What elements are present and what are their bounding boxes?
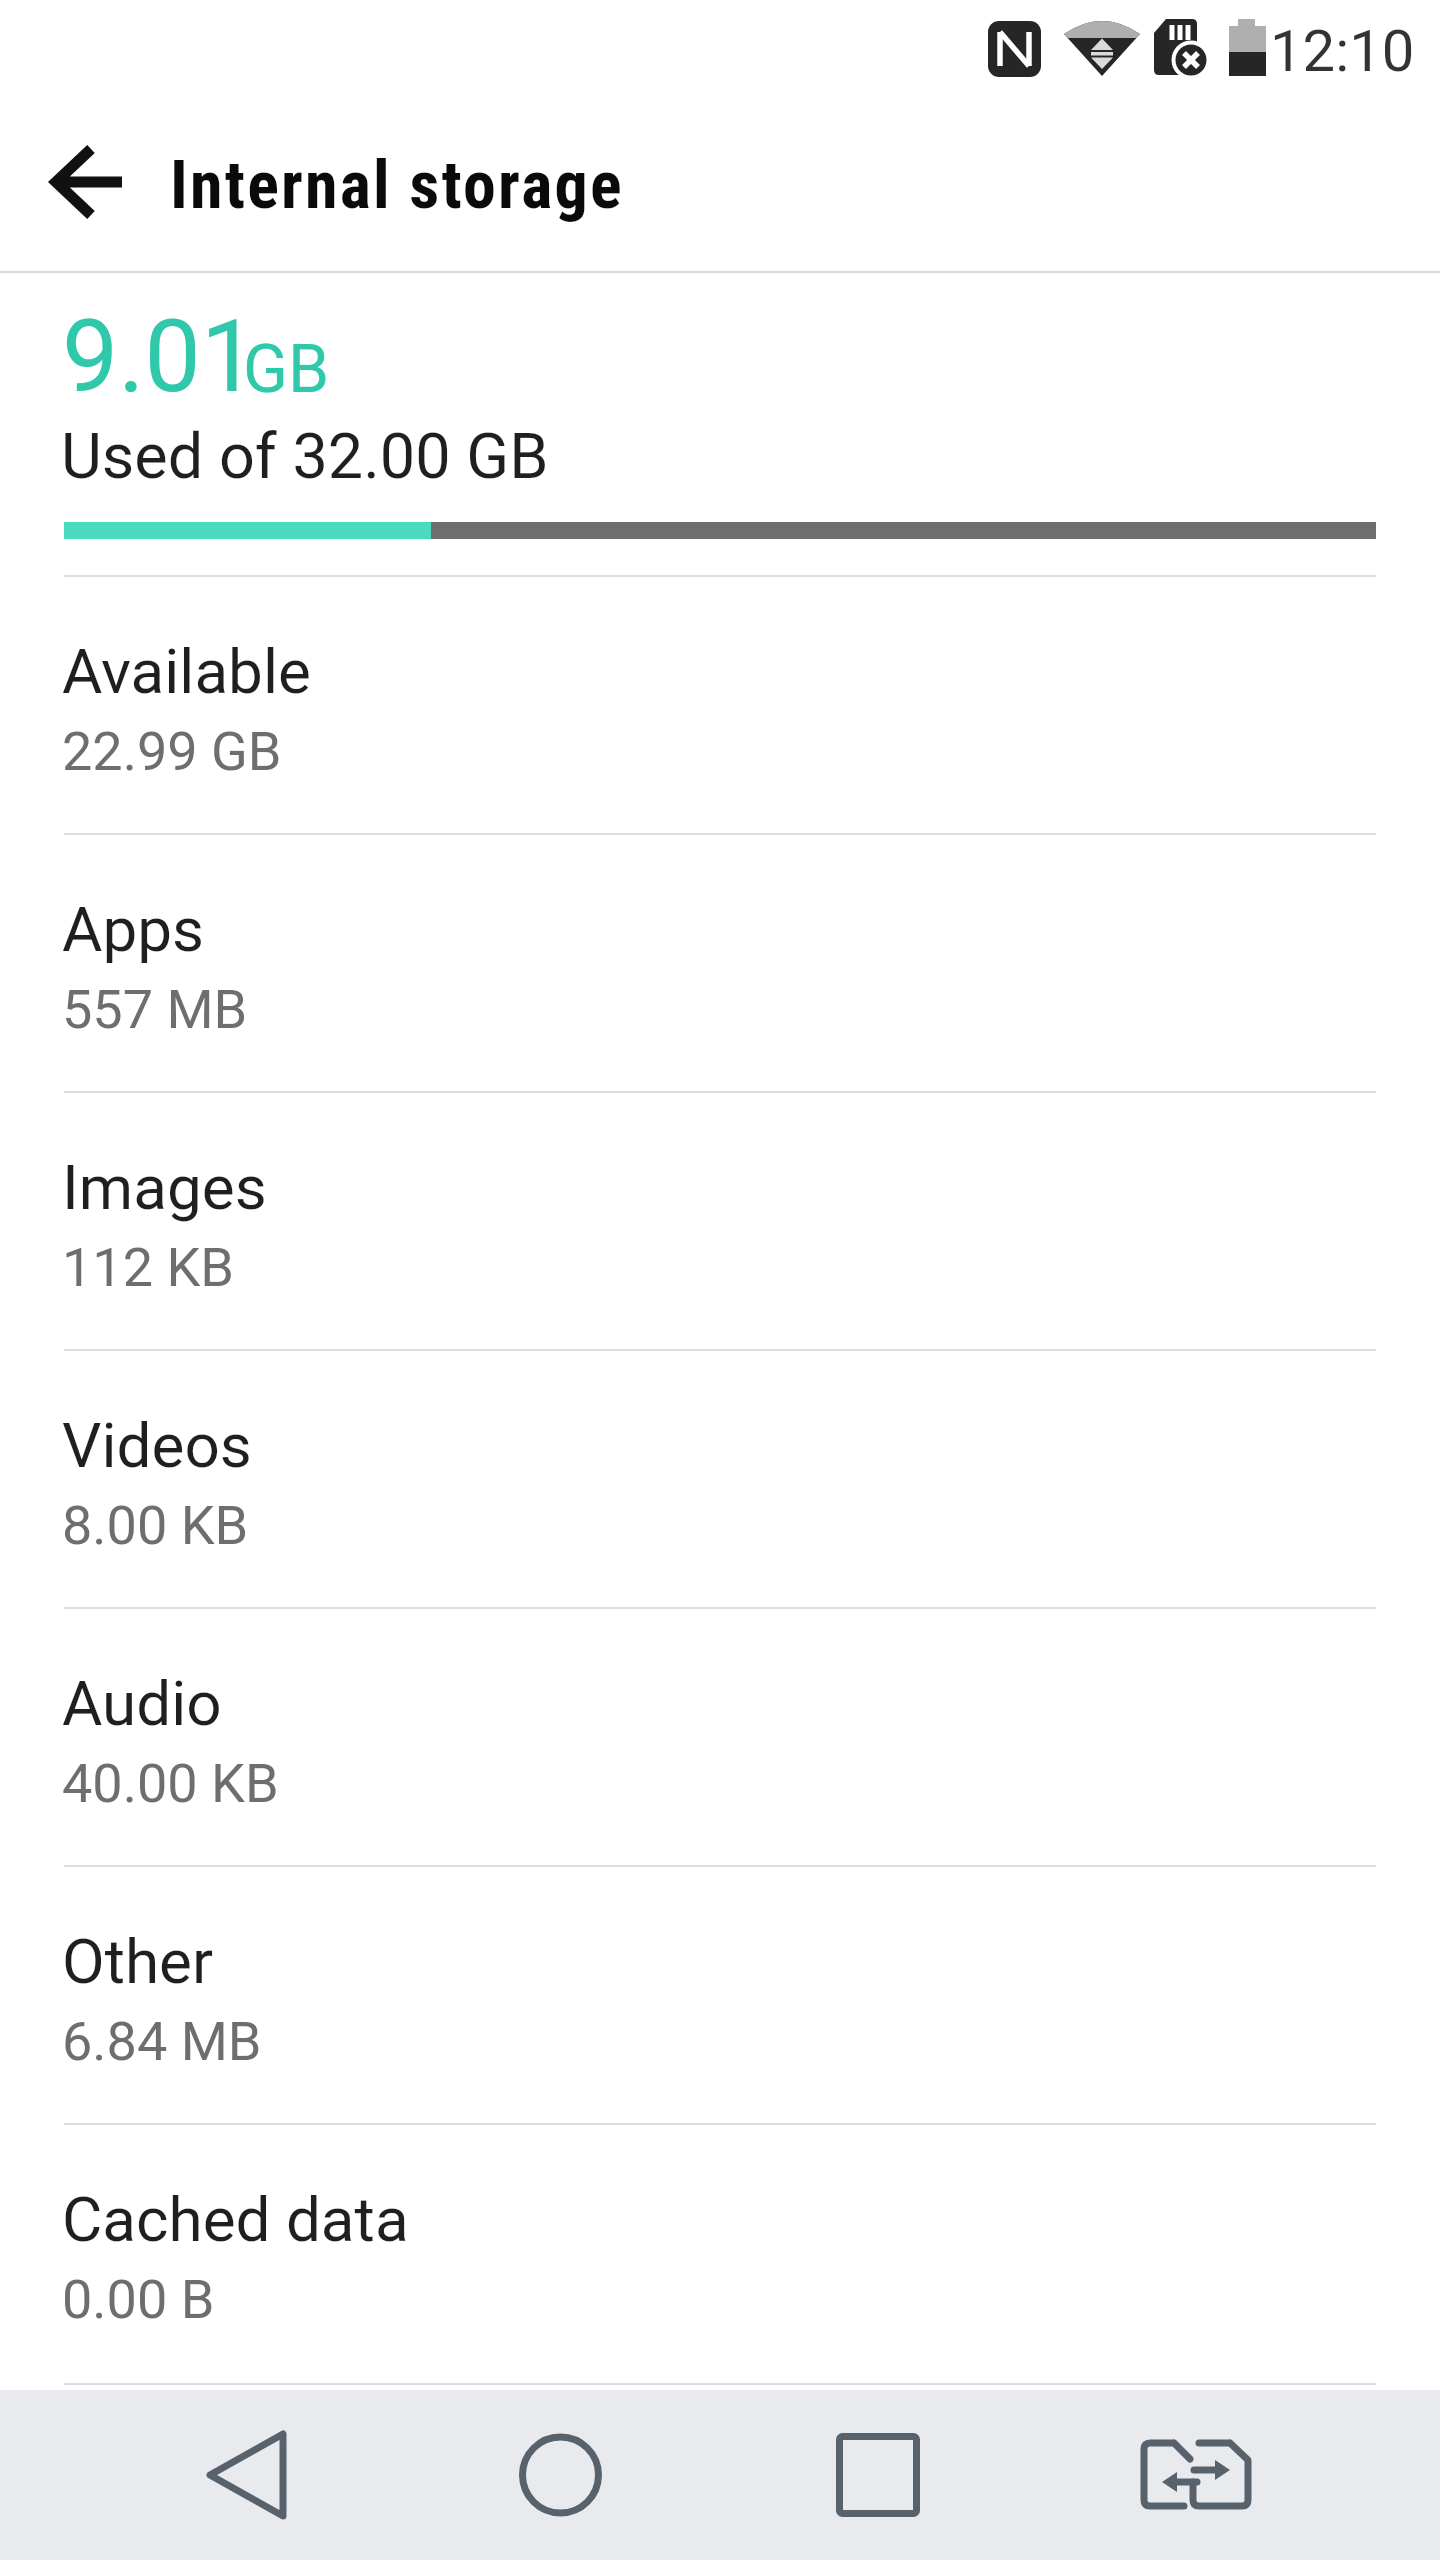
staticText: 12:10 [1270,17,1415,85]
button[interactable]: Audio [0,1607,1440,1865]
staticText: 0.00 B [62,2268,215,2331]
button[interactable]: Apps [0,833,1440,1091]
staticText: Apps [62,893,205,966]
staticText: 8.00 KB [62,1494,249,1557]
staticText: Other [62,1925,213,1998]
staticText: Available [62,635,311,708]
button[interactable]: Images [0,1091,1440,1349]
staticText: GB [243,331,330,408]
staticText: 40.00 KB [62,1752,279,1815]
staticText: Videos [62,1409,252,1482]
button[interactable] [166,2390,326,2560]
button[interactable]: Other [0,1865,1440,2123]
button[interactable] [798,2390,958,2560]
staticText: 557 MB [62,978,248,1041]
staticText: Internal storage [170,147,624,224]
button[interactable]: Videos [0,1349,1440,1607]
staticText: 22.99 GB [62,720,282,783]
staticText: Audio [62,1667,222,1740]
button[interactable]: Cached data [0,2123,1440,2381]
staticText: Images [62,1151,267,1224]
staticText: Used of 32.00 GB [61,420,549,494]
button[interactable] [1118,2390,1278,2560]
staticText: 6.84 MB [62,2010,262,2073]
staticText: 112 KB [62,1236,234,1299]
button[interactable]: Available [0,575,1440,833]
staticText: 9.01 [62,298,257,415]
button[interactable] [28,122,152,242]
staticText: Cached data [62,2183,409,2256]
button[interactable] [480,2390,640,2560]
